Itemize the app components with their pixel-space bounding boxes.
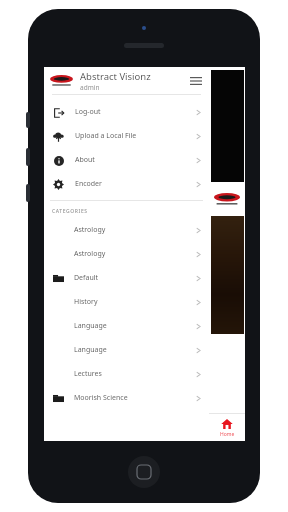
button[interactable]: Abstract Visionz bbox=[44, 67, 209, 94]
button[interactable]: Language bbox=[44, 314, 209, 338]
staticText: About bbox=[75, 155, 95, 165]
staticText: Lectures bbox=[74, 369, 102, 379]
button[interactable]: History bbox=[44, 290, 209, 314]
staticText: Language bbox=[74, 345, 107, 355]
staticText: Encoder bbox=[75, 179, 102, 189]
staticText: Abstract Visionz bbox=[80, 70, 151, 83]
button[interactable]: Upload a Local File bbox=[44, 124, 209, 148]
staticText: Language bbox=[74, 321, 107, 331]
button[interactable]: Home bbox=[209, 414, 245, 441]
button[interactable]: Log-out bbox=[44, 100, 209, 124]
button[interactable]: Language bbox=[44, 338, 209, 362]
button[interactable]: Astrology bbox=[44, 218, 209, 242]
button[interactable]: Moorish Science bbox=[44, 386, 209, 410]
staticText: admin bbox=[80, 83, 100, 92]
button[interactable]: Encoder bbox=[44, 172, 209, 196]
button[interactable]: Astrology bbox=[44, 242, 209, 266]
staticText: Default bbox=[74, 273, 99, 283]
button[interactable]: About bbox=[44, 148, 209, 172]
staticText: Astrology bbox=[74, 225, 106, 235]
button[interactable]: Default bbox=[44, 266, 209, 290]
button[interactable]: Menu bbox=[187, 72, 205, 90]
button[interactable]: Lectures bbox=[44, 362, 209, 386]
staticText: CATEGORIES bbox=[52, 208, 88, 215]
staticText: Home bbox=[220, 431, 235, 438]
staticText: Log-out bbox=[75, 107, 101, 117]
staticText: Astrology bbox=[74, 249, 106, 259]
staticText: History bbox=[74, 297, 98, 307]
staticText: Upload a Local File bbox=[75, 131, 137, 141]
staticText: Moorish Science bbox=[74, 393, 128, 403]
